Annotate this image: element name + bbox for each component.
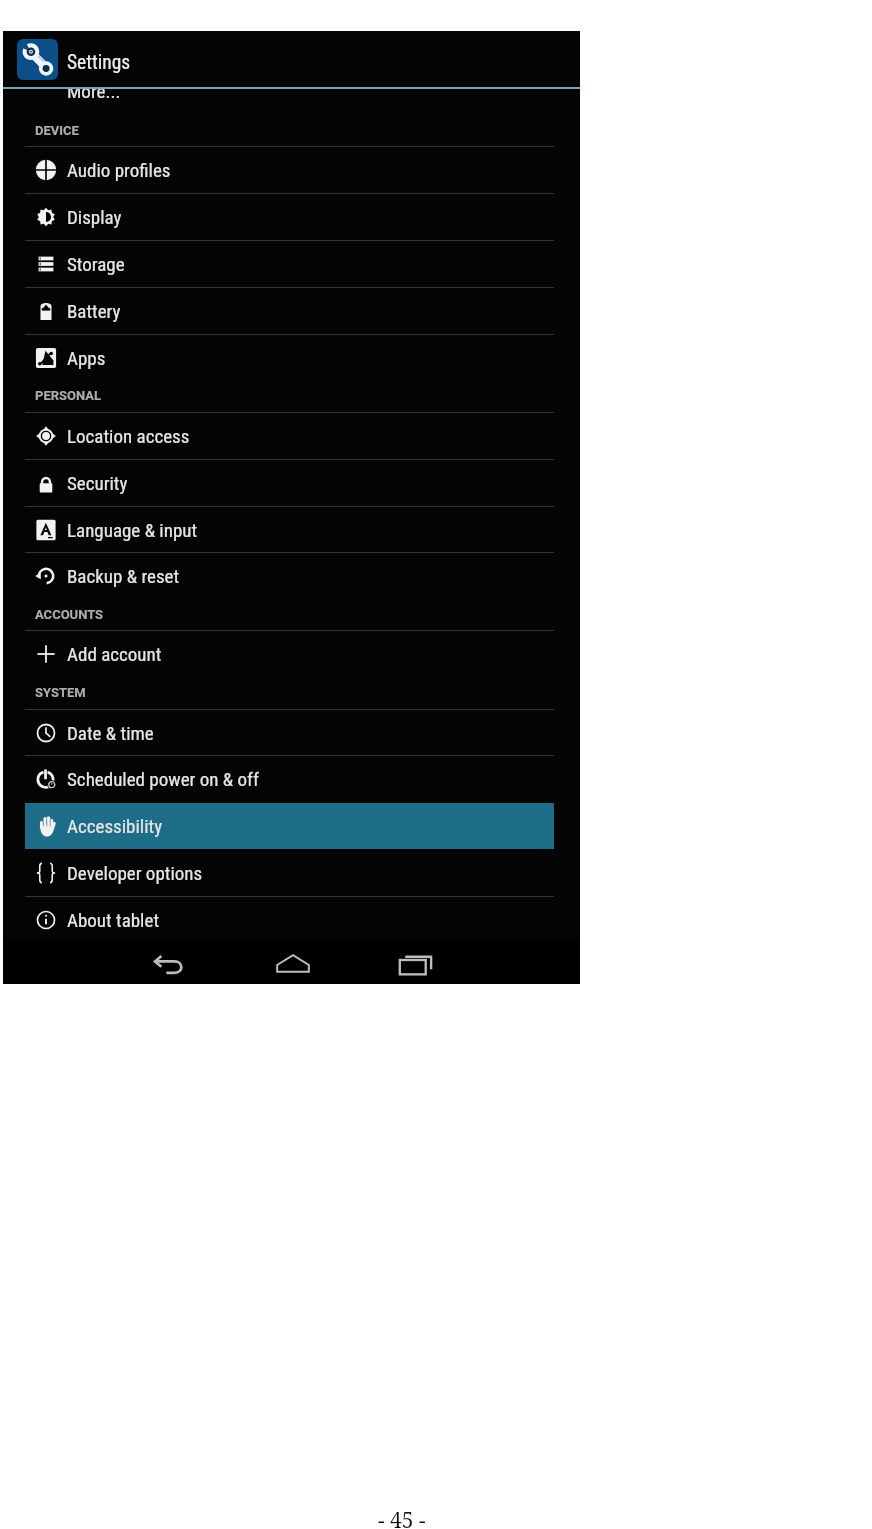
staticText: Accessibility bbox=[67, 815, 163, 837]
staticText: Location access bbox=[67, 425, 190, 447]
staticText: Date & time bbox=[67, 722, 154, 744]
staticText: - 45 - bbox=[378, 1506, 426, 1529]
staticText: Developer options bbox=[67, 862, 203, 884]
button[interactable]: Settings bbox=[17, 39, 58, 80]
staticText: Security bbox=[67, 472, 128, 494]
staticText: About tablet bbox=[67, 909, 160, 931]
staticText: DEVICE bbox=[35, 123, 79, 138]
button[interactable]: Display bbox=[3, 194, 580, 240]
staticText: Audio profiles bbox=[67, 159, 171, 181]
button[interactable]: Developer options bbox=[3, 850, 580, 896]
button[interactable]: About tablet bbox=[3, 897, 580, 942]
button[interactable]: Location access bbox=[3, 413, 580, 459]
staticText: Storage bbox=[67, 253, 125, 275]
staticText: ACCOUNTS bbox=[35, 607, 104, 622]
staticText: More... bbox=[67, 89, 121, 102]
staticText: SYSTEM bbox=[35, 685, 86, 700]
button[interactable]: Storage bbox=[3, 241, 580, 287]
button[interactable]: Apps bbox=[3, 335, 580, 381]
staticText: PERSONAL bbox=[35, 388, 102, 403]
button[interactable]: Battery bbox=[3, 288, 580, 334]
button[interactable]: Date & time bbox=[3, 710, 580, 756]
staticText: Add account bbox=[67, 643, 162, 665]
staticText: Display bbox=[67, 206, 122, 228]
button[interactable]: Accessibility bbox=[3, 803, 580, 849]
staticText: Battery bbox=[67, 300, 121, 322]
button[interactable]: More... bbox=[3, 89, 580, 114]
staticText: Backup & reset bbox=[67, 565, 180, 587]
button[interactable]: Back bbox=[152, 947, 188, 983]
button[interactable]: Audio profiles bbox=[3, 147, 580, 193]
button[interactable]: Home bbox=[275, 947, 311, 983]
button[interactable]: Security bbox=[3, 460, 580, 506]
button[interactable]: Add account bbox=[3, 631, 580, 677]
staticText: Scheduled power on & off bbox=[67, 768, 260, 790]
button[interactable]: Scheduled power on & off bbox=[3, 756, 580, 802]
staticText: Apps bbox=[67, 347, 106, 369]
staticText: Settings bbox=[67, 51, 131, 74]
button[interactable]: Language & input bbox=[3, 507, 580, 553]
staticText: Language & input bbox=[67, 519, 198, 541]
button[interactable]: Backup & reset bbox=[3, 553, 580, 599]
button[interactable]: Recent apps bbox=[398, 947, 434, 983]
